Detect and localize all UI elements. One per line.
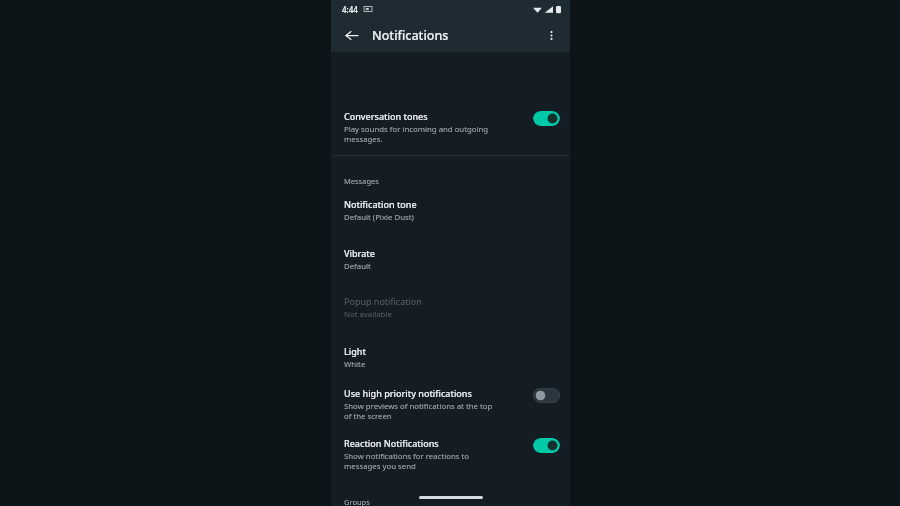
- button[interactable]: Notification tone: [331, 197, 570, 224]
- staticText: 4:44: [342, 4, 358, 15]
- staticText: Groups: [344, 497, 370, 506]
- button[interactable]: More options: [537, 21, 565, 49]
- staticText: Messages: [344, 176, 379, 186]
- button[interactable]: Reaction Notifications: [331, 436, 570, 472]
- button[interactable]: Light: [331, 344, 570, 371]
- staticText: Notification tone: [344, 198, 417, 210]
- staticText: White: [344, 359, 366, 370]
- staticText: Light: [344, 345, 366, 357]
- staticText: Reaction Notifications: [344, 437, 439, 449]
- staticText: Popup notification: [344, 295, 422, 307]
- button[interactable]: Toggle on: [533, 111, 560, 126]
- button[interactable]: Back: [337, 21, 365, 49]
- staticText: Notifications: [372, 27, 449, 44]
- staticText: Show previews of notifications at the to…: [344, 401, 493, 421]
- staticText: Use high priority notifications: [344, 387, 472, 399]
- button[interactable]: Vibrate: [331, 246, 570, 273]
- staticText: Default: [344, 261, 371, 272]
- staticText: Not available: [344, 309, 392, 320]
- button[interactable]: Use high priority notifications: [331, 386, 570, 422]
- staticText: Play sounds for incoming and outgoing me…: [344, 124, 489, 144]
- staticText: Conversation tones: [344, 110, 428, 122]
- button[interactable]: Conversation tones: [331, 109, 570, 145]
- button[interactable]: Toggle off: [533, 388, 560, 403]
- staticText: Vibrate: [344, 247, 375, 259]
- staticText: Default (Pixie Dust): [344, 212, 414, 223]
- staticText: Show notifications for reactions to mess…: [344, 451, 469, 471]
- button[interactable]: Popup notification: [331, 294, 570, 321]
- button[interactable]: Toggle on: [533, 438, 560, 453]
